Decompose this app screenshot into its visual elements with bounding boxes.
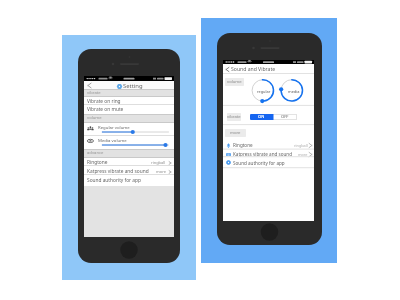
button[interactable]: Media volume — [84, 136, 174, 149]
staticText: Katpress vibrate and sound — [233, 151, 292, 157]
staticText: Ringtone — [87, 159, 108, 166]
staticText: OFF — [281, 114, 289, 120]
staticText: Sound authority for app — [233, 160, 285, 166]
staticText: vibrate — [87, 90, 101, 96]
staticText: ON — [258, 114, 265, 120]
staticText: volume — [227, 79, 242, 85]
button[interactable]: Vibrate on mute — [84, 105, 174, 114]
staticText: Katpress vibrate and sound — [87, 168, 149, 175]
staticText: Vibrate on mute — [87, 106, 124, 113]
staticText: Vibrate on ring — [87, 98, 121, 105]
staticText: media — [288, 89, 300, 94]
staticText: Ringtone — [233, 142, 253, 148]
staticText: regular — [257, 89, 271, 94]
staticText: Setting — [123, 82, 143, 90]
staticText: more — [156, 169, 166, 174]
button[interactable]: Katpress vibrate and sound — [223, 150, 314, 158]
button[interactable]: Regular volume — [84, 123, 174, 136]
staticText: vibrate — [227, 114, 241, 120]
staticText: ringball — [294, 143, 308, 148]
button[interactable]: Vibrate on ring — [84, 97, 174, 106]
staticText: advance — [87, 150, 104, 156]
staticText: volume — [87, 115, 102, 121]
staticText: more — [230, 130, 241, 136]
button[interactable]: Ringtone — [84, 158, 174, 167]
staticText: Regular volume — [98, 124, 130, 130]
button[interactable]: ON — [250, 114, 297, 120]
staticText: ringball — [151, 160, 166, 165]
staticText: Media volume — [98, 137, 127, 143]
button[interactable]: Sound authority for app — [223, 157, 314, 168]
button[interactable]: Sound authority for app — [84, 175, 174, 186]
staticText: more — [298, 152, 308, 157]
staticText: Sound authority for app — [87, 177, 141, 184]
button[interactable]: Katpress vibrate and sound — [84, 167, 174, 176]
staticText: Sound and Vibrate — [231, 66, 276, 73]
button[interactable]: Ringtone — [223, 140, 314, 150]
button[interactable]: Back — [84, 81, 97, 90]
